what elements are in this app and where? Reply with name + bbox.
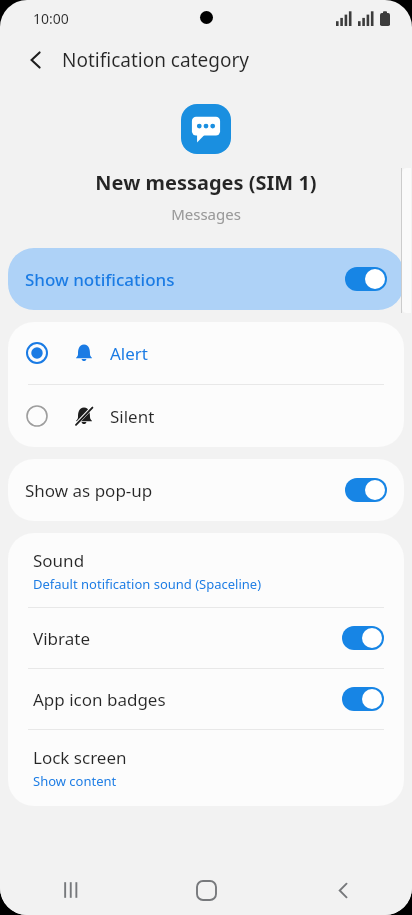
- button[interactable]: Show as pop-up: [8, 459, 404, 521]
- staticText: Default notification sound (Spaceline): [33, 575, 262, 593]
- button[interactable]: App icon badges: [8, 669, 404, 729]
- staticText: Messages: [171, 204, 241, 224]
- staticText: 10:00: [33, 9, 69, 28]
- staticText: New messages (SIM 1): [95, 169, 317, 196]
- button[interactable]: Silent: [8, 385, 404, 447]
- staticText: Lock screen: [33, 746, 127, 769]
- staticText: Show content: [33, 772, 117, 790]
- button[interactable]: Back: [14, 38, 58, 82]
- button[interactable]: Toggle: [345, 267, 387, 291]
- button[interactable]: Toggle: [342, 626, 384, 650]
- button[interactable]: Toggle: [345, 478, 387, 502]
- button[interactable]: Recent apps: [0, 865, 138, 915]
- button[interactable]: Alert: [8, 322, 404, 384]
- staticText: Show notifications: [25, 268, 345, 291]
- staticText: Vibrate: [33, 627, 342, 650]
- staticText: Silent: [110, 405, 155, 428]
- staticText: App icon badges: [33, 688, 342, 711]
- staticText: Sound: [33, 549, 85, 572]
- button[interactable]: Vibrate: [8, 608, 404, 668]
- button[interactable]: Toggle: [342, 687, 384, 711]
- staticText: Alert: [110, 342, 148, 365]
- button[interactable]: Sound: [8, 533, 404, 607]
- button[interactable]: Back: [275, 865, 412, 915]
- staticText: Notification category: [62, 47, 249, 73]
- button[interactable]: Lock screen: [8, 730, 404, 806]
- button[interactable]: Home: [138, 865, 275, 915]
- staticText: Show as pop-up: [25, 479, 345, 502]
- button[interactable]: Show notifications: [8, 248, 404, 310]
